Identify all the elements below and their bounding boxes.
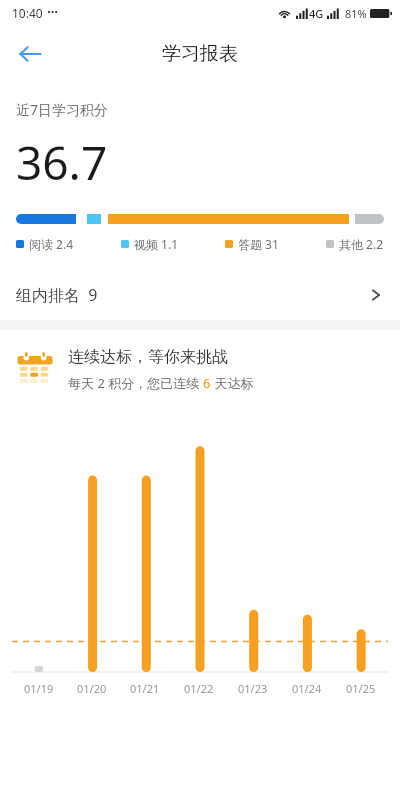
staticText: 连续达标，等你来挑战 (68, 347, 228, 367)
staticText: 01/20 (77, 681, 107, 696)
staticText: 其他 2.2 (339, 236, 384, 252)
staticText: 10:40 (12, 5, 43, 21)
staticText: 01/25 (346, 681, 376, 696)
button[interactable]: 连续达标，等你来挑战 (0, 330, 400, 408)
staticText: 阅读 2.4 (29, 236, 74, 252)
button[interactable]: Back (8, 32, 52, 76)
staticText: 答题 31 (238, 236, 279, 252)
staticText: 组内排名 9 (16, 284, 98, 306)
staticText: 36.7 (16, 131, 108, 194)
staticText: 01/24 (292, 681, 322, 696)
staticText: 4G (309, 6, 324, 21)
staticText: 81% (345, 6, 367, 21)
staticText: 每天 2 积分，您已连续 (68, 374, 203, 392)
staticText: 01/19 (24, 681, 54, 696)
staticText: 近7日学习积分 (16, 100, 109, 119)
staticText: 6 (203, 374, 211, 392)
staticText: 天达标 (211, 374, 254, 392)
staticText: 01/23 (238, 681, 268, 696)
staticText: 学习报表 (162, 42, 238, 66)
staticText: 视频 1.1 (134, 236, 179, 252)
staticText: 01/22 (184, 681, 214, 696)
button[interactable]: 组内排名 9 (0, 270, 400, 320)
staticText: 01/21 (130, 681, 160, 696)
